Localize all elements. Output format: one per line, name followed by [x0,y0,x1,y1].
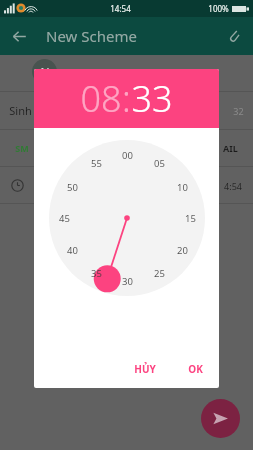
staticText: 45 [59,212,70,225]
button[interactable]: 05 [154,157,165,170]
staticText: 14:54 [110,3,131,14]
staticText: 05 [154,157,165,170]
staticText: 15 [185,212,196,225]
button[interactable]: Send [201,399,240,438]
button[interactable]: OK [180,357,211,381]
button[interactable]: 25 [154,267,165,280]
staticText: 20 [177,244,188,257]
staticText: 08 [80,74,122,123]
button[interactable]: 30 [122,275,133,288]
staticText: AIL [223,142,238,154]
button[interactable]: Back [0,17,38,55]
staticText: Sinh [9,103,32,118]
button[interactable]: SM [15,142,29,154]
staticText: 40 [67,244,78,257]
staticText: 00 [122,149,133,162]
button[interactable]: 33 [131,74,173,123]
staticText: 10 [177,181,188,194]
staticText: 100% [208,3,229,14]
button[interactable]: 15 [185,212,196,225]
button[interactable]: 08 [80,74,122,123]
staticText: 32 [233,105,244,117]
button[interactable]: 00 [122,149,133,162]
staticText: 4:54 [224,180,242,192]
staticText: 50 [67,181,78,194]
staticText: 55 [91,157,102,170]
button[interactable]: Sinh [0,92,253,129]
button[interactable]: HỦY [126,357,164,381]
staticText: N [40,64,50,80]
staticText: : [122,74,131,123]
button[interactable]: 35 [91,267,102,280]
staticText: New Scheme [46,26,137,46]
button[interactable]: 40 [67,244,78,257]
staticText: 25 [154,267,165,280]
staticText: 30 [122,275,133,288]
staticText: 33 [131,74,173,123]
button[interactable]: N [32,59,57,84]
button[interactable]: 55 [91,157,102,170]
staticText: HỦY [134,362,156,376]
staticText: OK [188,362,203,376]
button[interactable]: Attach [215,17,253,55]
button[interactable]: 10 [177,181,188,194]
button[interactable]: 45 [59,212,70,225]
staticText: 35 [91,267,102,280]
button[interactable]: 20 [177,244,188,257]
staticText: SM [15,142,29,154]
button[interactable]: 4:54 [0,167,253,203]
button[interactable]: AIL [223,142,238,154]
button[interactable]: 50 [67,181,78,194]
